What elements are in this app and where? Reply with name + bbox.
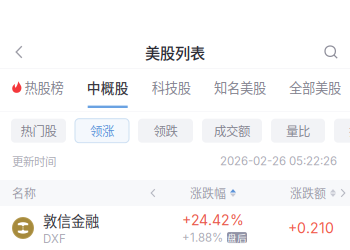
staticText: DXF xyxy=(43,232,66,246)
button[interactable]: 热股榜 xyxy=(12,69,64,111)
button[interactable]: 涨跌额 xyxy=(290,180,336,206)
staticText: 2026-02-26 05:22:26 xyxy=(220,154,337,168)
staticText: +24.42% xyxy=(182,211,244,229)
button[interactable]: 全部美股 xyxy=(289,69,341,111)
staticText: 热股榜 xyxy=(25,77,64,97)
staticText: 涨跌额 xyxy=(290,184,326,202)
staticText: 敦信金融 xyxy=(43,210,99,231)
staticText: 热门股 xyxy=(20,122,56,140)
staticText: 量比 xyxy=(286,122,310,140)
button[interactable]: 知名美股 xyxy=(214,69,266,111)
button[interactable]: Back xyxy=(0,32,38,72)
button[interactable]: More columns xyxy=(336,180,350,206)
staticText: 名称 xyxy=(12,184,36,202)
staticText: 成交额 xyxy=(214,122,250,140)
staticText: 盘后 xyxy=(227,231,247,244)
button[interactable]: 敦信金融 xyxy=(0,206,350,250)
staticText: +0.210 xyxy=(288,219,334,236)
button[interactable]: 热门股 xyxy=(11,119,66,143)
button[interactable]: 换手 xyxy=(334,119,350,143)
button[interactable]: 成交额 xyxy=(202,119,262,143)
staticText: 换手 xyxy=(349,122,350,140)
staticText: 领跌 xyxy=(153,122,177,140)
button[interactable]: 涨跌幅 xyxy=(164,180,262,206)
staticText: +1.88% xyxy=(182,231,223,244)
staticText: 美股列表 xyxy=(145,41,205,63)
button[interactable]: 科技股 xyxy=(152,69,191,111)
staticText: 中概股 xyxy=(87,77,129,97)
staticText: 科技股 xyxy=(152,77,191,97)
staticText: 知名美股 xyxy=(214,77,266,97)
button[interactable]: 量比 xyxy=(271,119,325,143)
staticText: 更新时间 xyxy=(12,153,56,169)
button[interactable]: Search xyxy=(312,32,350,72)
button[interactable]: Previous columns xyxy=(142,180,164,206)
button[interactable]: 领涨 xyxy=(75,119,129,143)
button[interactable]: 中概股 xyxy=(87,69,129,111)
staticText: 领涨 xyxy=(90,122,114,140)
staticText: 全部美股 xyxy=(289,77,341,97)
button[interactable]: 领跌 xyxy=(138,119,193,143)
staticText: 涨跌幅 xyxy=(190,184,226,202)
